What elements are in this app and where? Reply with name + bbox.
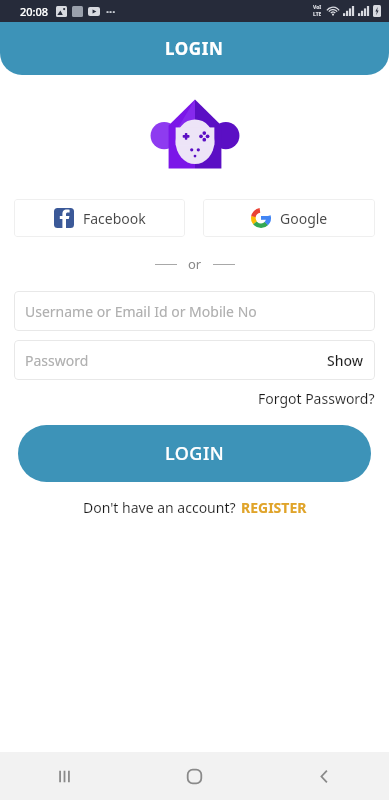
staticText: 20:08 xyxy=(20,4,49,19)
button[interactable]: Password xyxy=(14,340,375,380)
button[interactable]: Recent apps xyxy=(0,752,129,800)
staticText: REGISTER xyxy=(241,498,307,517)
button[interactable]: Home xyxy=(129,752,259,800)
staticText: Facebook xyxy=(83,209,146,228)
staticText: Username or Email Id or Mobile No xyxy=(25,302,257,321)
staticText: LTE xyxy=(313,11,322,18)
staticText: Google xyxy=(280,209,328,228)
staticText: Forgot Password? xyxy=(258,389,375,408)
button[interactable]: Username or Email Id or Mobile No xyxy=(14,291,375,331)
staticText: LOGIN xyxy=(165,441,225,466)
staticText: Don't have an account? xyxy=(83,498,236,517)
button[interactable]: Facebook xyxy=(14,199,185,237)
staticText: ··· xyxy=(106,4,116,19)
button[interactable]: Back xyxy=(259,752,389,800)
staticText: or xyxy=(188,255,202,273)
staticText: VoI xyxy=(313,4,322,11)
staticText: Password xyxy=(25,351,89,370)
button[interactable]: Google xyxy=(203,199,375,237)
button[interactable]: REGISTER xyxy=(241,498,307,517)
button[interactable]: LOGIN xyxy=(18,425,371,482)
staticText: LOGIN xyxy=(165,37,224,60)
staticText: Show xyxy=(327,351,364,370)
button[interactable]: Forgot Password? xyxy=(258,386,375,411)
button[interactable]: Show xyxy=(316,340,375,380)
